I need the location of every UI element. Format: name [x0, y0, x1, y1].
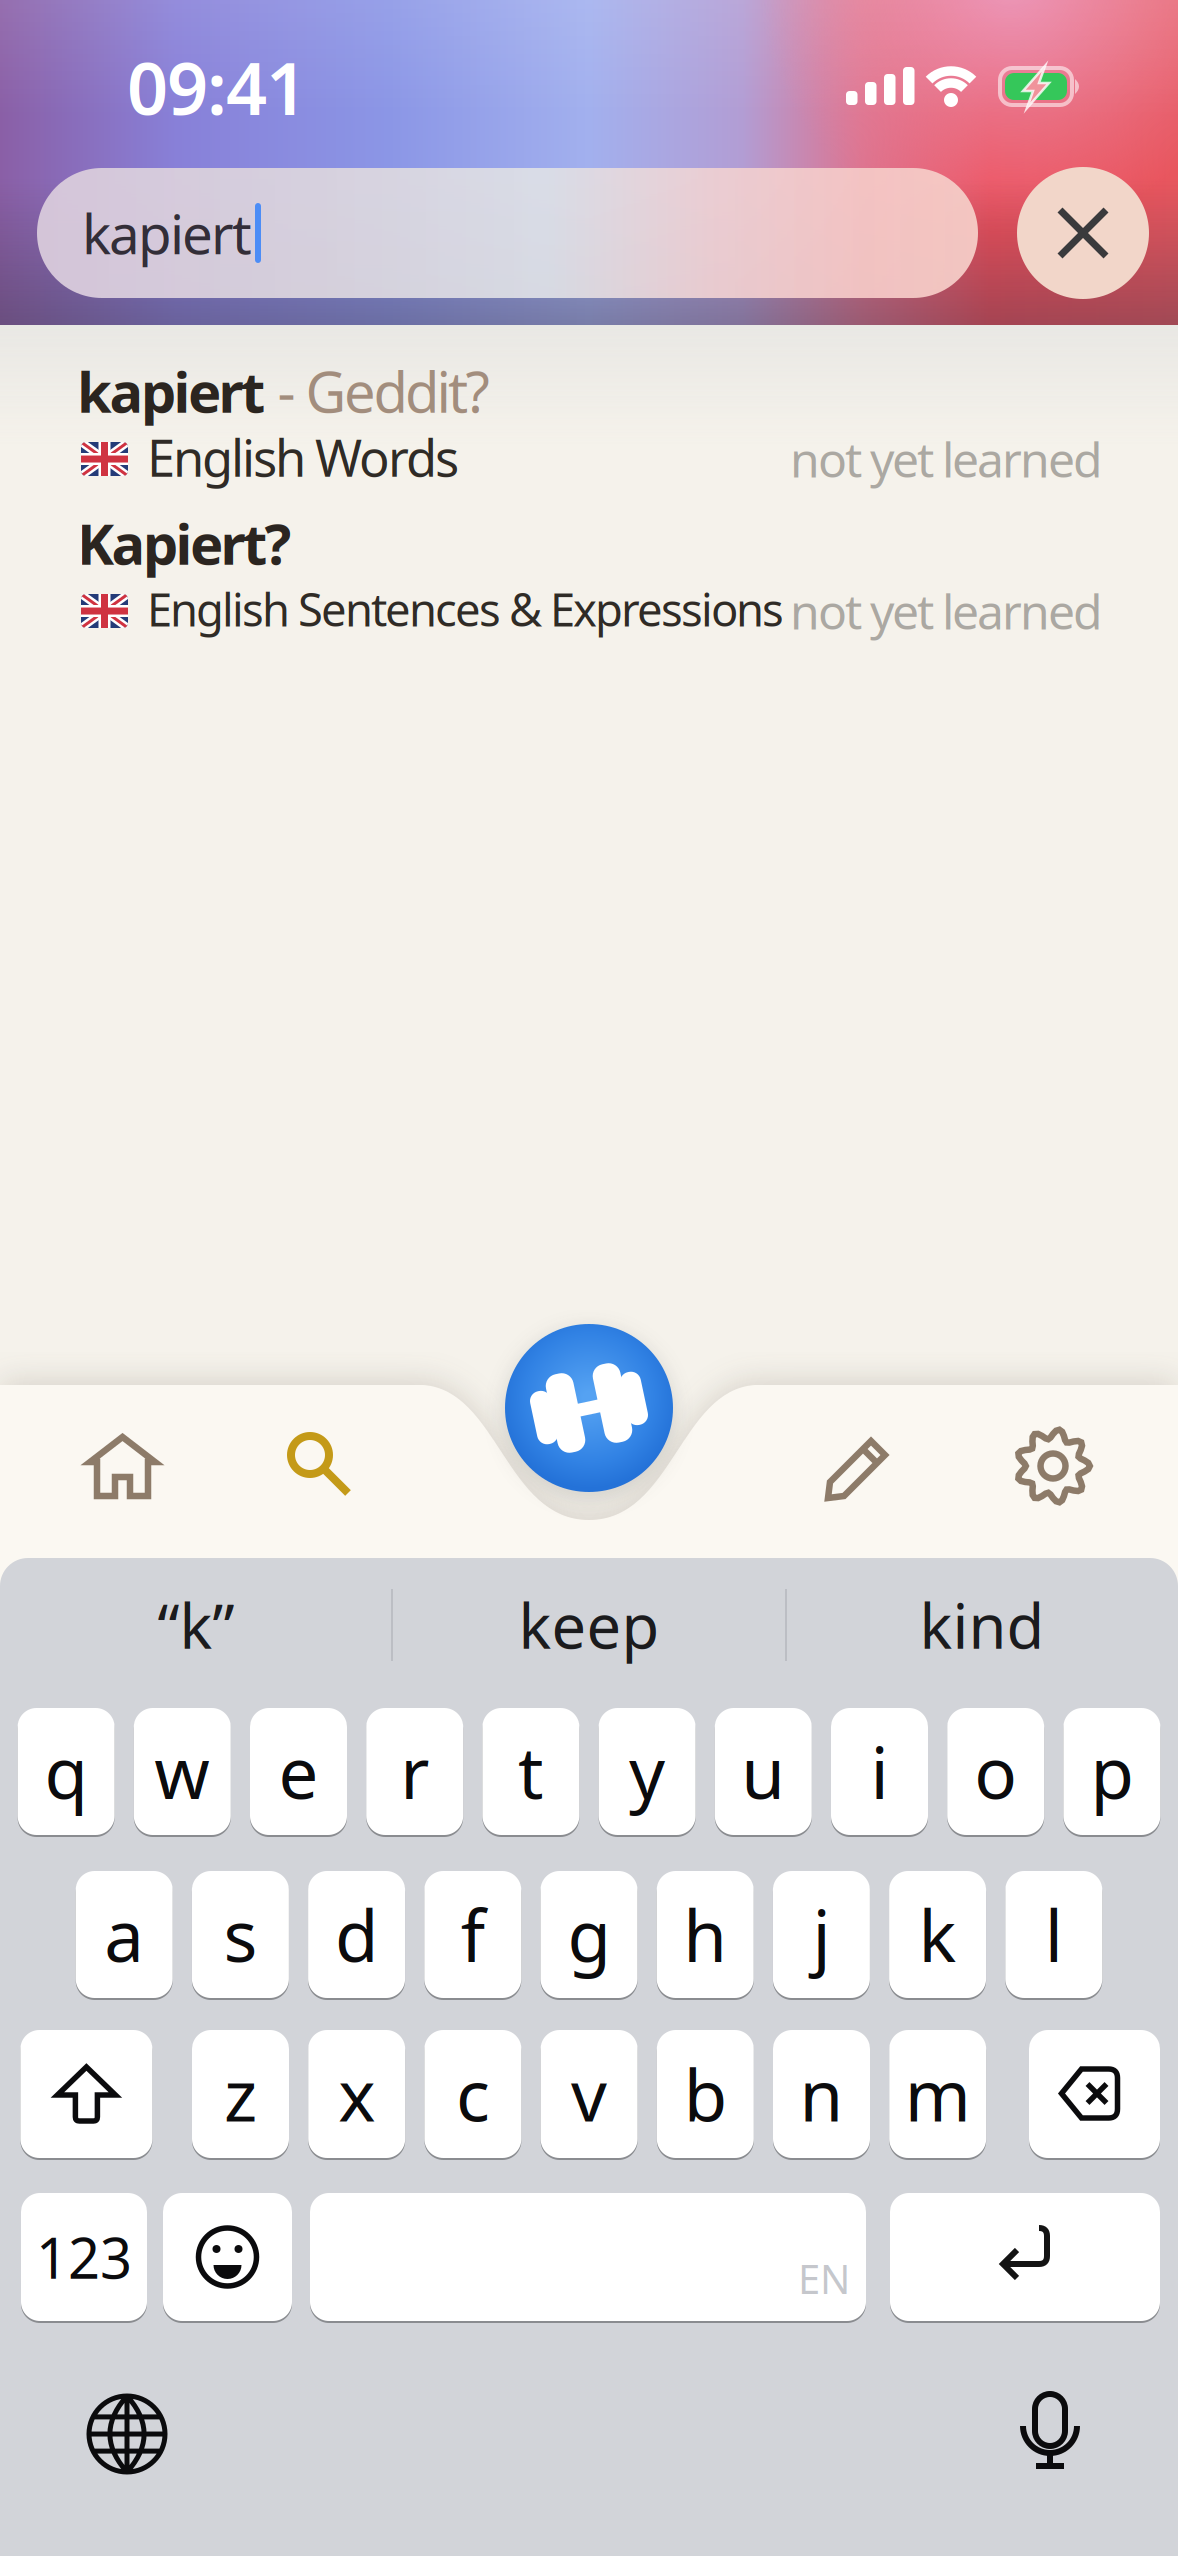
button[interactable]: kind	[792, 1580, 1172, 1670]
button[interactable]: u	[715, 1708, 812, 1837]
button[interactable]: w	[134, 1708, 231, 1837]
staticText: kapiert	[77, 354, 265, 428]
staticText: - Geddit?	[265, 354, 489, 428]
button[interactable]: Edit	[801, 1411, 913, 1525]
button[interactable]: i	[831, 1708, 928, 1837]
button[interactable]: Numbers	[21, 2193, 147, 2323]
button[interactable]: Delete	[1029, 2030, 1160, 2160]
button[interactable]: k	[889, 1871, 986, 2000]
button[interactable]: q	[18, 1708, 115, 1837]
button[interactable]: j	[773, 1871, 870, 2000]
button[interactable]: a	[76, 1871, 173, 2000]
button[interactable]: g	[540, 1871, 637, 2000]
staticText: 123	[36, 2220, 132, 2294]
staticText: kind	[919, 1584, 1044, 1666]
button[interactable]: x	[308, 2030, 405, 2160]
staticText: Kapiert?	[77, 506, 291, 580]
button[interactable]: r	[366, 1708, 463, 1837]
button[interactable]: Search	[264, 1409, 374, 1519]
button[interactable]: Return	[890, 2193, 1160, 2323]
button[interactable]: v	[541, 2030, 638, 2160]
staticText: b	[684, 2047, 727, 2141]
staticText: c	[456, 2047, 490, 2141]
staticText: keep	[518, 1584, 659, 1666]
button[interactable]: c	[424, 2030, 521, 2160]
staticText: x	[338, 2047, 375, 2141]
staticText: “k”	[157, 1584, 234, 1666]
staticText: 09:41	[127, 39, 307, 135]
staticText: s	[223, 1888, 257, 1981]
staticText: j	[812, 1888, 830, 1981]
staticText: kapiert	[82, 197, 252, 269]
staticText: u	[741, 1725, 785, 1818]
button[interactable]: Clear search	[1017, 167, 1149, 299]
staticText: h	[683, 1888, 727, 1981]
button[interactable]: Shift	[20, 2030, 152, 2160]
staticText: n	[799, 2047, 843, 2141]
staticText: t	[518, 1725, 544, 1818]
staticText: EN	[798, 2252, 850, 2305]
button[interactable]: keep	[399, 1580, 779, 1670]
staticText: k	[919, 1888, 957, 1981]
staticText: y	[629, 1725, 665, 1818]
staticText: q	[45, 1725, 88, 1818]
button[interactable]: o	[947, 1708, 1044, 1837]
staticText: not yet learned	[790, 427, 1103, 491]
button[interactable]: n	[773, 2030, 870, 2160]
staticText: g	[567, 1888, 610, 1981]
staticText: not yet learned	[790, 579, 1103, 643]
button[interactable]: Kapiert?	[77, 515, 1103, 663]
staticText: w	[154, 1725, 210, 1818]
button[interactable]: kapiert	[37, 168, 978, 298]
staticText: r	[400, 1725, 429, 1818]
button[interactable]: Space	[310, 2193, 866, 2323]
button[interactable]: Settings	[995, 1408, 1111, 1524]
staticText: p	[1090, 1725, 1133, 1818]
button[interactable]: Emoji	[163, 2193, 292, 2323]
staticText: a	[104, 1888, 144, 1981]
staticText: d	[335, 1888, 378, 1981]
button[interactable]: p	[1063, 1708, 1160, 1837]
button[interactable]: “k”	[6, 1580, 386, 1670]
staticText: o	[974, 1725, 1017, 1818]
button[interactable]: d	[308, 1871, 405, 2000]
button[interactable]: z	[192, 2030, 289, 2160]
staticText: v	[571, 2047, 607, 2141]
button[interactable]: kapiert	[77, 363, 1103, 511]
button[interactable]: Next keyboard	[73, 2380, 181, 2488]
button[interactable]: s	[192, 1871, 289, 2000]
button[interactable]: m	[889, 2030, 986, 2160]
staticText: English Sentences & Expressions	[147, 579, 784, 639]
button[interactable]: t	[482, 1708, 579, 1837]
button[interactable]: Dictate	[1006, 2380, 1094, 2484]
staticText: i	[870, 1725, 888, 1818]
button[interactable]: Home	[62, 1410, 183, 1524]
staticText: z	[224, 2047, 257, 2141]
button[interactable]: f	[424, 1871, 521, 2000]
button[interactable]: h	[657, 1871, 754, 2000]
button[interactable]: b	[657, 2030, 754, 2160]
staticText: e	[278, 1725, 318, 1818]
staticText: English Words	[147, 423, 459, 491]
staticText: l	[1045, 1888, 1063, 1981]
staticText: f	[461, 1888, 485, 1981]
button[interactable]: l	[1005, 1871, 1102, 2000]
staticText: m	[905, 2047, 971, 2141]
button[interactable]: e	[250, 1708, 347, 1837]
button[interactable]: y	[599, 1708, 696, 1837]
button[interactable]: Practice	[505, 1324, 673, 1492]
